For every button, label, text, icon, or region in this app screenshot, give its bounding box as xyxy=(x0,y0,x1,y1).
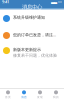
staticText: 消息 xyxy=(21,95,27,99)
staticText: 我的 xyxy=(53,95,59,99)
staticText: 首页 xyxy=(5,95,11,99)
staticText: 发现 xyxy=(37,95,43,99)
staticText: 您的订单已发货，请注意查收 xyxy=(13,32,58,37)
staticText: 修复若干问题，优化体验 xyxy=(13,53,57,58)
staticText: 消息中心 xyxy=(22,4,42,10)
button[interactable]: 您的订单已发货，请注意查收 xyxy=(0,27,64,44)
button[interactable]: 我的 xyxy=(48,89,64,100)
button[interactable]: 消息 xyxy=(16,89,32,100)
staticText: ▃▃ ▭ xyxy=(51,0,62,4)
staticText: 系统升级维护通知 xyxy=(13,15,45,20)
button[interactable]: 首页 xyxy=(0,89,16,100)
button[interactable]: 发现 xyxy=(32,89,48,100)
staticText: 9:41 xyxy=(2,0,9,4)
button[interactable]: 系统升级维护通知 xyxy=(0,10,64,27)
button[interactable]: 新版本更新提示 xyxy=(0,44,64,61)
staticText: 新版本更新提示 xyxy=(13,47,41,52)
